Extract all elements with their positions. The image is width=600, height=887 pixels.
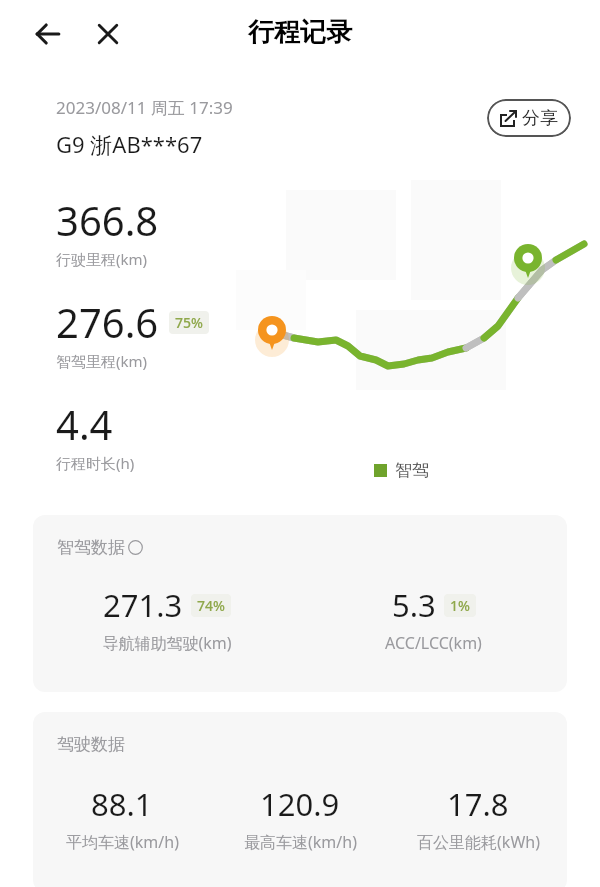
staticText: 1% (450, 596, 470, 615)
button[interactable]: 分享 (487, 99, 571, 137)
staticText: 行程记录 (248, 16, 352, 49)
staticText: 120.9 (260, 783, 340, 825)
staticText: 88.1 (91, 783, 153, 825)
staticText: 行程时长(h) (56, 453, 135, 473)
staticText: 17.8 (447, 783, 509, 825)
staticText: 最高车速(km/h) (244, 831, 357, 853)
staticText: 2023/08/11 周五 17:39 (56, 96, 233, 119)
staticText: 智驾里程(km) (56, 351, 148, 371)
staticText: 导航辅助驾驶(km) (102, 632, 232, 654)
staticText: 智驾 (395, 460, 429, 481)
staticText: 276.6 (56, 295, 159, 349)
staticText: 驾驶数据 (57, 734, 125, 755)
staticText: 智驾数据 (57, 537, 125, 558)
staticText: 百公里能耗(kWh) (417, 831, 540, 853)
staticText: ACC/LCC(km) (385, 632, 482, 654)
staticText: 271.3 (103, 584, 183, 626)
button[interactable]: 驾驶数据 (33, 712, 567, 887)
staticText: 4.4 (56, 397, 113, 451)
staticText: 平均车速(km/h) (66, 831, 179, 853)
button[interactable]: Close (84, 10, 132, 58)
button[interactable]: 智驾数据 (33, 515, 567, 692)
staticText: 行驶里程(km) (56, 249, 148, 269)
staticText: 75% (175, 313, 203, 332)
staticText: G9 浙AB***67 (56, 129, 203, 159)
staticText: 分享 (522, 107, 558, 130)
staticText: 74% (197, 596, 225, 615)
staticText: 5.3 (392, 584, 436, 626)
button[interactable]: Back (24, 10, 72, 58)
staticText: 366.8 (56, 193, 159, 247)
